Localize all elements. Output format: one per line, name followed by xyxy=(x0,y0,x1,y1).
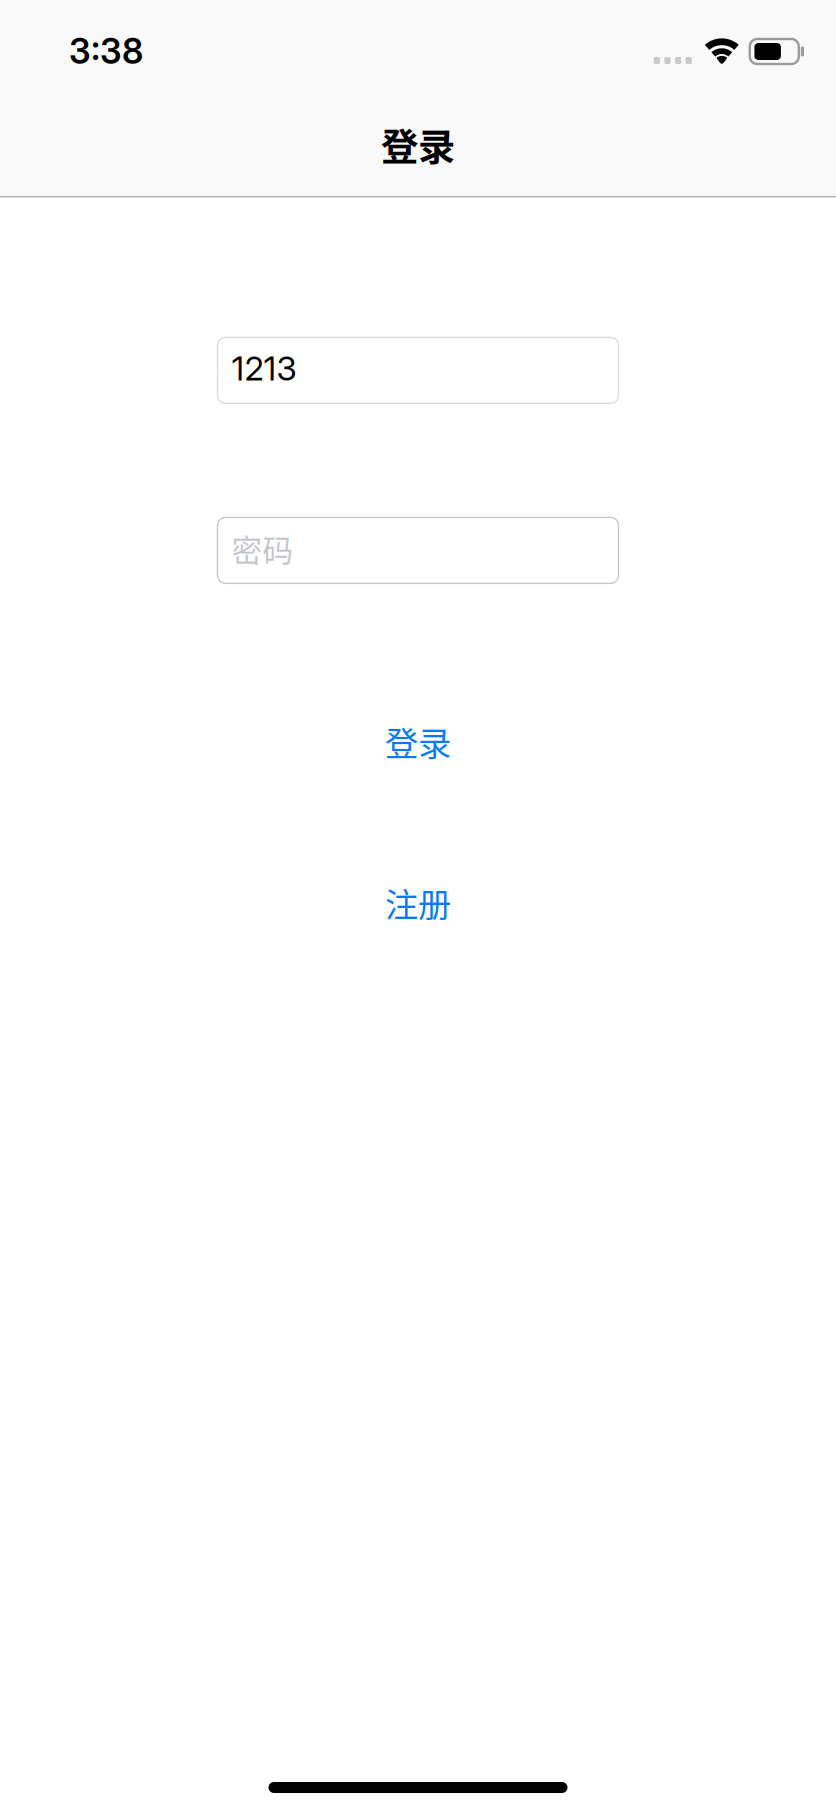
staticText: 注册 xyxy=(385,878,451,927)
button[interactable]: 注册 xyxy=(217,880,619,924)
button[interactable]: 登录 xyxy=(217,719,619,763)
button[interactable]: 1213 xyxy=(217,337,618,403)
staticText: 3:38 xyxy=(69,30,143,72)
staticText: 登录 xyxy=(385,717,451,766)
staticText: 密码 xyxy=(231,526,293,571)
staticText: 1213 xyxy=(231,348,296,388)
button[interactable]: 密码 xyxy=(217,517,618,583)
staticText: 登录 xyxy=(381,117,455,172)
